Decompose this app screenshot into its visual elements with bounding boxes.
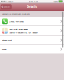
button[interactable]: Centers (1, 5, 11, 9)
staticText: Details (26, 5, 37, 9)
staticText: 9:41 AM (29, 0, 38, 3)
staticText: Map (2, 48, 6, 51)
button[interactable]: Store List (0, 36, 64, 44)
button[interactable]: (707) 447-5786 (0, 17, 64, 26)
button[interactable]: 531 Nut Tree Road (0, 26, 64, 35)
staticText: Store List (2, 39, 12, 42)
staticText: 100% (53, 0, 58, 3)
staticText: 531 Nut Tree Road (9, 27, 27, 31)
button[interactable]: Map (0, 45, 64, 53)
staticText: Vacaville Premium Outlets (2, 12, 30, 15)
staticText: AT&T (8, 0, 13, 3)
staticText: Suite 4 Vacaville, CA 95687 (9, 31, 37, 34)
staticText: Centers (3, 5, 10, 8)
staticText: (707) 447-5786 (9, 20, 23, 23)
